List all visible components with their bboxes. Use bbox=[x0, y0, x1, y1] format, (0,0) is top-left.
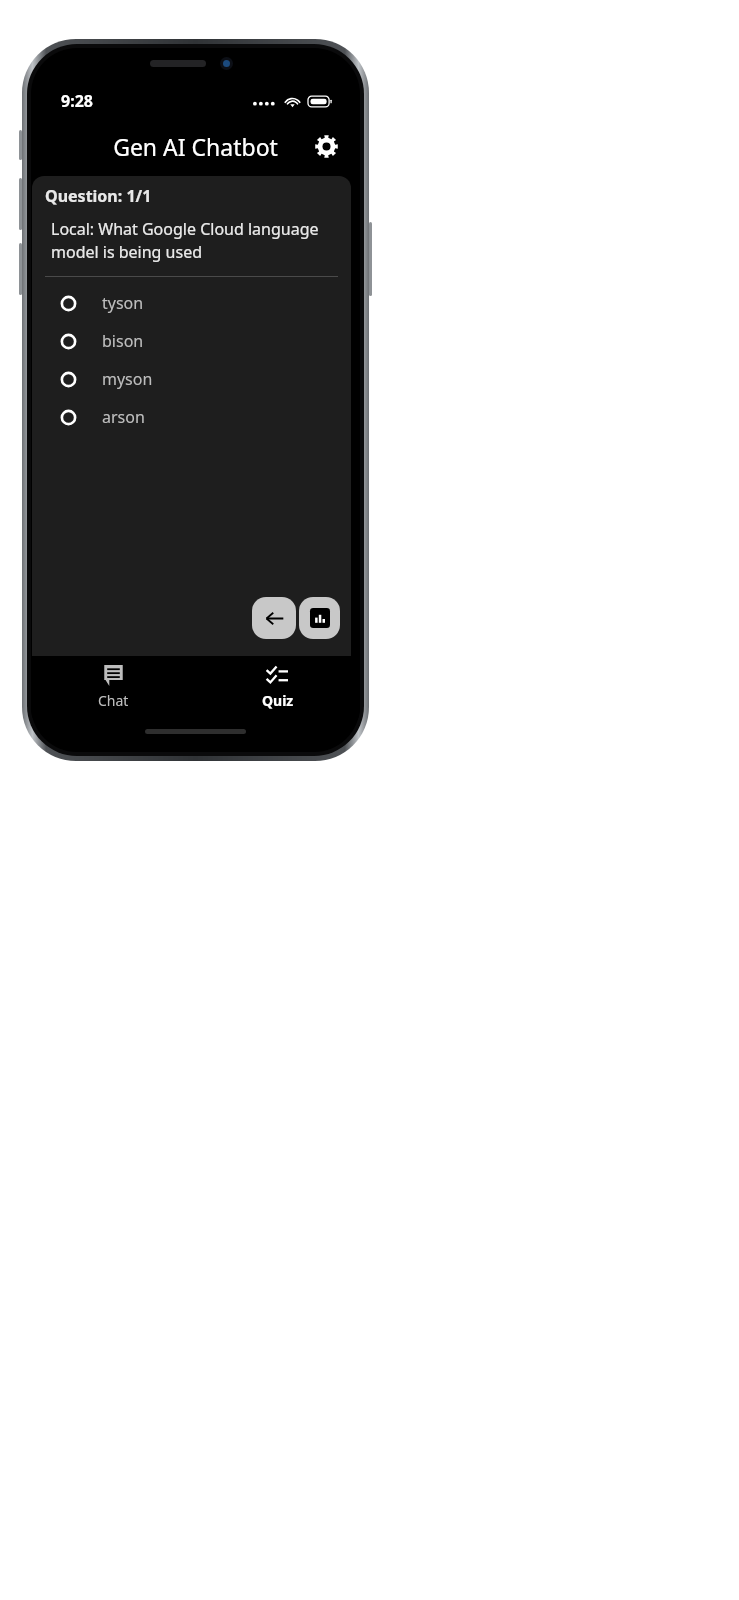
staticText: 9:28 bbox=[61, 90, 93, 112]
staticText: Question: 1/1 bbox=[45, 185, 152, 207]
staticText: Chat bbox=[98, 691, 129, 710]
button[interactable]: Settings bbox=[304, 124, 348, 168]
button[interactable]: myson bbox=[32, 360, 351, 398]
staticText: tyson bbox=[102, 292, 144, 314]
button[interactable]: Back bbox=[252, 597, 296, 639]
staticText: Gen AI Chatbot bbox=[113, 131, 278, 162]
button[interactable]: Chat bbox=[31, 656, 195, 718]
staticText: Local: What Google Cloud language model … bbox=[51, 218, 337, 263]
button[interactable]: arson bbox=[32, 398, 351, 436]
staticText: bison bbox=[102, 330, 144, 352]
staticText: Quiz bbox=[262, 691, 294, 710]
staticText: myson bbox=[102, 368, 153, 390]
button[interactable]: Results bbox=[299, 597, 340, 639]
button[interactable]: bison bbox=[32, 322, 351, 360]
staticText: arson bbox=[102, 406, 145, 428]
button[interactable]: tyson bbox=[32, 284, 351, 322]
button[interactable]: Quiz bbox=[195, 656, 360, 718]
